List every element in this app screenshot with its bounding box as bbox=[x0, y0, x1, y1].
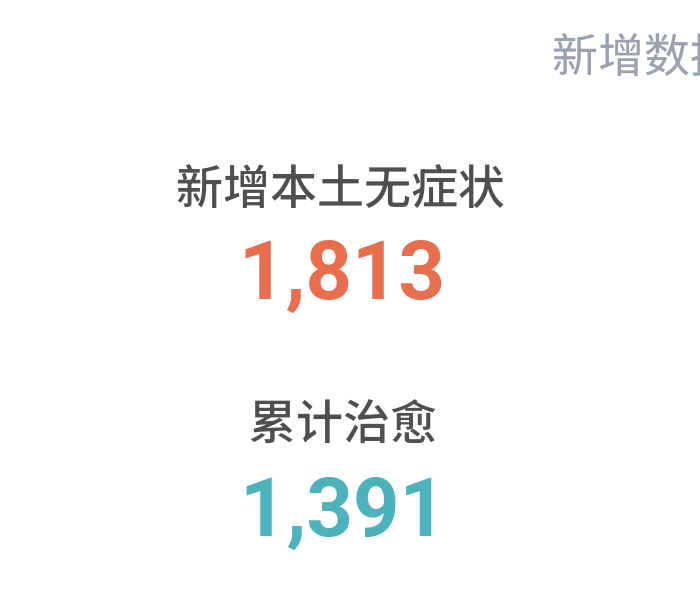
button[interactable]: 累计治愈 bbox=[249, 384, 437, 452]
button[interactable]: 1,813 bbox=[239, 224, 445, 319]
staticText: 1,813 bbox=[239, 224, 445, 319]
staticText: 新增本土无症状 bbox=[176, 149, 505, 217]
button[interactable]: 新增数据 bbox=[552, 19, 700, 86]
staticText: 新增数据 bbox=[552, 19, 700, 86]
button[interactable]: 1,391 bbox=[240, 461, 446, 556]
staticText: 累计治愈 bbox=[249, 384, 437, 452]
staticText: 1,391 bbox=[240, 461, 446, 556]
button[interactable]: 新增本土无症状 bbox=[176, 149, 505, 217]
